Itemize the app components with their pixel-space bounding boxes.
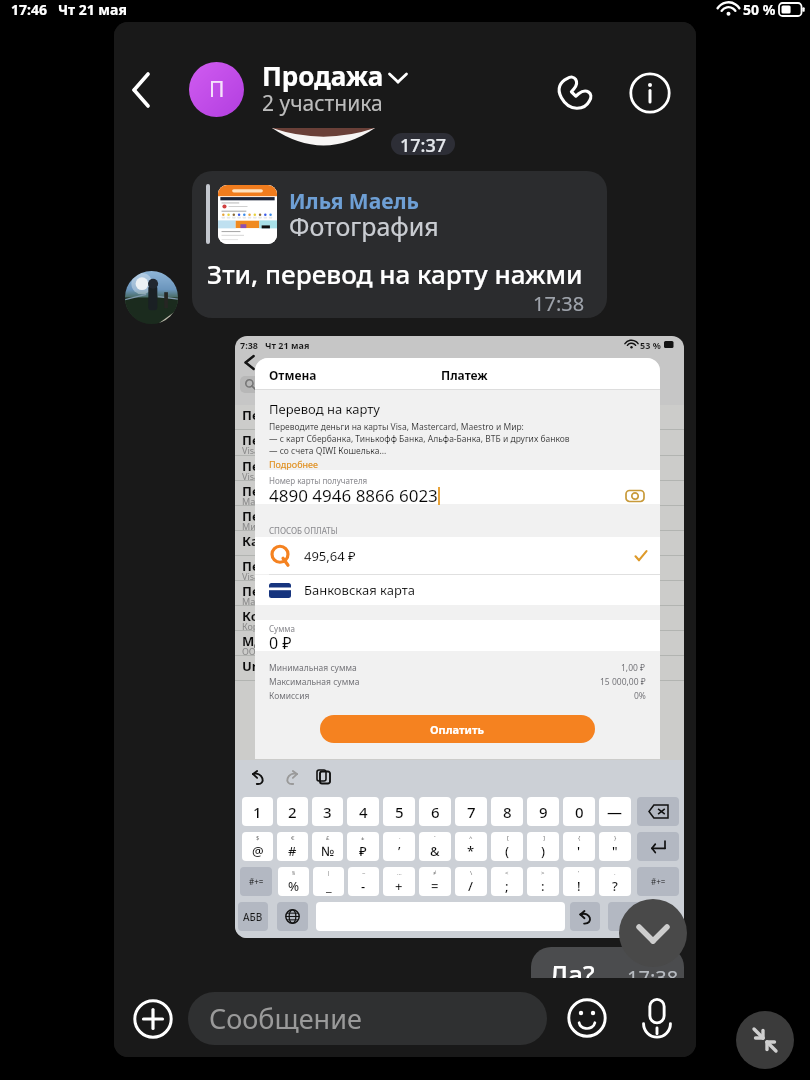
button[interactable]: ~ [348,867,379,896]
staticText: Переводите деньги на карты Visa, Masterc… [269,421,524,433]
staticText: — с карт Сбербанка, Тинькофф Банка, Альф… [269,433,570,445]
staticText: АБВ [243,910,263,924]
button[interactable]: Да? [531,947,684,978]
staticText: | [327,869,331,877]
button[interactable]: . [599,867,631,896]
button[interactable]: Банковская карта [269,575,660,605]
button[interactable]: < [491,867,523,896]
button[interactable]: #+= [637,867,679,896]
button[interactable]: Emoji [562,993,612,1043]
button[interactable]: 7 [455,797,487,826]
button[interactable]: Redo [281,767,301,787]
staticText: #+= [651,876,666,887]
button[interactable]: — [599,797,631,826]
button[interactable]: … [383,867,415,896]
staticText: = [431,877,439,895]
button[interactable]: Collapse [736,1011,794,1069]
button[interactable]: Undo [248,767,268,787]
staticText: ~ [362,869,366,877]
button[interactable]: 0 [563,797,595,826]
button[interactable]: Back [120,66,168,114]
button[interactable]: Scroll to bottom [619,899,687,967]
staticText: Банковская карта [304,581,415,599]
button[interactable]: 5 [383,797,415,826]
staticText: § [292,869,296,877]
button[interactable]: $ [242,832,273,861]
staticText: - [361,877,366,895]
staticText: . [614,869,616,877]
button[interactable] [255,620,660,651]
button[interactable]: ≠ [419,867,451,896]
button[interactable]: Продажа [262,58,552,120]
button[interactable]: > [527,867,559,896]
staticText: ] [543,834,545,842]
button[interactable]: 8 [491,797,523,826]
staticText: Платеж [441,367,488,383]
staticText: ? [612,877,618,895]
staticText: Минимальная сумма [269,662,357,674]
button[interactable]: · [383,832,415,861]
button[interactable]: ± [347,832,379,861]
staticText: ` [434,834,436,842]
button[interactable]: Language [277,902,308,931]
button[interactable]: Info [624,67,676,119]
button[interactable]: Сообщение [188,992,547,1045]
button[interactable]: Attach [125,991,181,1047]
staticText: П [209,75,225,104]
staticText: \ [470,869,473,877]
staticText: Кар [242,532,267,550]
staticText: ± [361,834,365,842]
staticText: Uni [242,657,265,675]
button[interactable]: 4 [347,797,379,826]
button[interactable]: АБВ [238,902,268,931]
staticText: 4 [359,802,368,822]
button[interactable]: ' [563,867,595,896]
staticText: # [288,842,297,860]
staticText: Отмена [269,367,317,383]
button[interactable]: € [277,832,308,861]
button[interactable]: { [563,832,595,861]
staticText: 1 [253,802,262,822]
button[interactable] [125,271,178,324]
button[interactable]: Voice message [631,991,683,1043]
button[interactable]: [ [491,832,523,861]
staticText: ' [578,869,580,877]
staticText: Visa [242,570,260,582]
button[interactable]: ret [637,832,679,861]
button[interactable] [255,470,660,504]
button[interactable]: 6 [419,797,451,826]
button[interactable]: #+= [240,867,272,896]
staticText: Перевод на карту [269,400,380,418]
button[interactable]: 9 [527,797,559,826]
staticText: — [607,802,623,822]
button[interactable]: А [608,902,658,931]
staticText: 50 % [743,0,776,19]
button[interactable]: ] [527,832,559,861]
button[interactable]: £ [312,832,343,861]
button[interactable]: ` [419,832,451,861]
button[interactable]: 495,64 ₽ [269,537,648,574]
staticText: ' [577,842,581,860]
button[interactable]: Paste [314,767,334,787]
staticText: + [395,877,403,895]
button[interactable]: П [189,62,244,117]
button[interactable]: \ [455,867,487,896]
staticText: € [291,834,295,842]
button[interactable]: § [278,867,309,896]
staticText: & [430,842,440,860]
button[interactable]: 1 [242,797,273,826]
button[interactable]: del [637,797,679,826]
button[interactable]: Пер [235,336,684,938]
button[interactable]: Илья Маель [192,171,607,318]
button[interactable]: Оплатить [320,715,595,743]
button[interactable]: Call [549,67,601,119]
staticText: #+= [249,876,264,887]
button[interactable]: | [313,867,344,896]
button[interactable]: } [599,832,631,861]
button[interactable]: Undo [570,902,600,931]
button[interactable]: 2 [277,797,308,826]
button[interactable]: ^ [455,832,487,861]
button[interactable]: 3 [312,797,343,826]
